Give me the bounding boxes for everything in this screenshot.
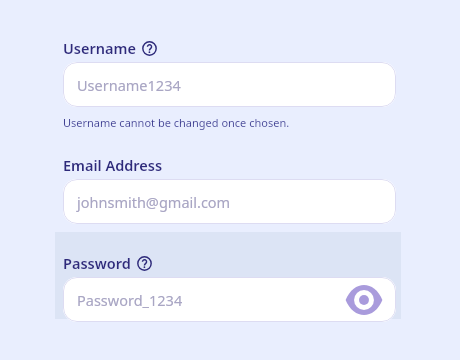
staticText: Password (63, 253, 131, 273)
staticText: Email Address (63, 155, 163, 175)
staticText: Username cannot be changed once chosen. (63, 115, 290, 130)
staticText: Username (63, 38, 136, 58)
button[interactable]: Password_1234 (63, 277, 396, 322)
staticText: johnsmith@gmail.com (77, 192, 231, 212)
button[interactable]: Username1234 (63, 62, 396, 107)
staticText: Username1234 (77, 75, 181, 95)
staticText: Password_1234 (77, 290, 183, 310)
button[interactable]: johnsmith@gmail.com (63, 179, 396, 224)
button[interactable]: Show password (344, 285, 384, 315)
